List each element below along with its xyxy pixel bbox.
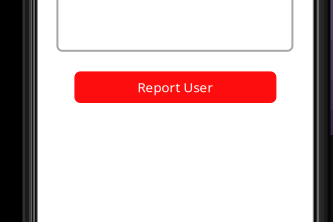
staticText: Report User — [137, 78, 213, 96]
button[interactable]: Report User — [74, 71, 276, 103]
